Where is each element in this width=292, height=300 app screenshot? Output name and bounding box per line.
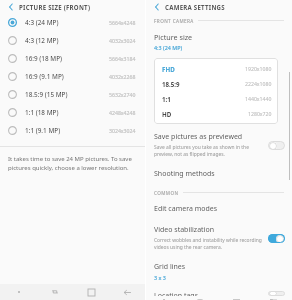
button[interactable]: Back: [109, 284, 145, 300]
button[interactable]: Grid lines: [146, 258, 292, 285]
staticText: 5632x2740: [109, 91, 136, 98]
button[interactable]: More options: [0, 284, 37, 300]
staticText: Location tags: [154, 291, 199, 296]
button[interactable]: 16:9 (18 MP): [0, 49, 145, 67]
button[interactable]: 1:1 (9.1 MP): [0, 121, 145, 139]
staticText: 5664x3184: [109, 55, 136, 62]
staticText: 18.5:9: [162, 80, 180, 88]
button[interactable]: 1:1 (18 MP): [0, 103, 145, 121]
button[interactable]: Save pictures as previewed: [146, 128, 292, 162]
button[interactable]: Edit camera modes: [146, 200, 292, 218]
staticText: It takes time to save 24 MP pictures. To…: [8, 155, 132, 172]
staticText: COMMON: [154, 190, 179, 196]
button[interactable]: 1:1: [154, 91, 278, 106]
staticText: 4248x4248: [109, 109, 136, 116]
staticText: Grid lines: [154, 262, 186, 272]
staticText: FHD: [162, 65, 175, 73]
staticText: Edit camera modes: [154, 204, 218, 214]
staticText: 4032x2268: [109, 73, 136, 80]
staticText: 16:9 (18 MP): [25, 54, 63, 63]
staticText: 1440x1440: [245, 95, 272, 102]
staticText: 5664x4248: [109, 19, 136, 26]
button[interactable]: 4:3 (24 MP): [0, 13, 145, 31]
staticText: Picture size: [154, 32, 193, 42]
staticText: 3024x3024: [109, 127, 136, 134]
staticText: 4:3 (12 MP): [25, 36, 59, 45]
button[interactable]: Recent apps: [37, 284, 73, 300]
staticText: 1:1: [162, 95, 171, 103]
button[interactable]: Back: [152, 1, 163, 12]
staticText: 1:1 (9.1 MP): [25, 126, 61, 135]
button[interactable]: Home: [73, 284, 109, 300]
button[interactable]: Back: [6, 1, 17, 12]
staticText: 16:9 (9.1 MP): [25, 72, 64, 81]
staticText: 4:3 (24 MP): [154, 44, 183, 51]
staticText: 4:3 (24 MP): [25, 18, 59, 27]
staticText: 2224x1080: [245, 80, 272, 87]
staticText: CAMERA SETTINGS: [165, 3, 225, 11]
button[interactable]: Location tags: [146, 287, 292, 300]
staticText: Shooting methods: [154, 169, 215, 179]
staticText: 1920x1080: [245, 65, 272, 72]
button[interactable]: 18.5:9: [154, 76, 278, 91]
staticText: Video stabilization: [154, 225, 214, 235]
staticText: Correct wobbles and instability while re…: [154, 237, 262, 251]
staticText: Save pictures as previewed: [154, 132, 243, 142]
button[interactable]: 16:9 (9.1 MP): [0, 67, 145, 85]
staticText: PICTURE SIZE (FRONT): [19, 3, 91, 11]
button[interactable]: 18.5:9 (15 MP): [0, 85, 145, 103]
staticText: 18.5:9 (15 MP): [25, 90, 68, 99]
button[interactable]: Picture size: [146, 28, 292, 55]
staticText: 1280x720: [248, 110, 272, 117]
button[interactable]: HD: [154, 106, 278, 121]
staticText: 3 x 3: [154, 274, 166, 281]
staticText: 1:1 (18 MP): [25, 108, 59, 117]
staticText: FRONT CAMERA: [154, 18, 194, 24]
staticText: HD: [162, 110, 172, 118]
button[interactable]: Video stabilization: [146, 221, 292, 255]
button[interactable]: FHD: [154, 61, 278, 76]
staticText: Save all pictures you take as shown in t…: [154, 144, 249, 158]
staticText: 4032x3024: [109, 37, 136, 44]
button[interactable]: Shooting methods: [146, 165, 292, 183]
button[interactable]: 4:3 (12 MP): [0, 31, 145, 49]
